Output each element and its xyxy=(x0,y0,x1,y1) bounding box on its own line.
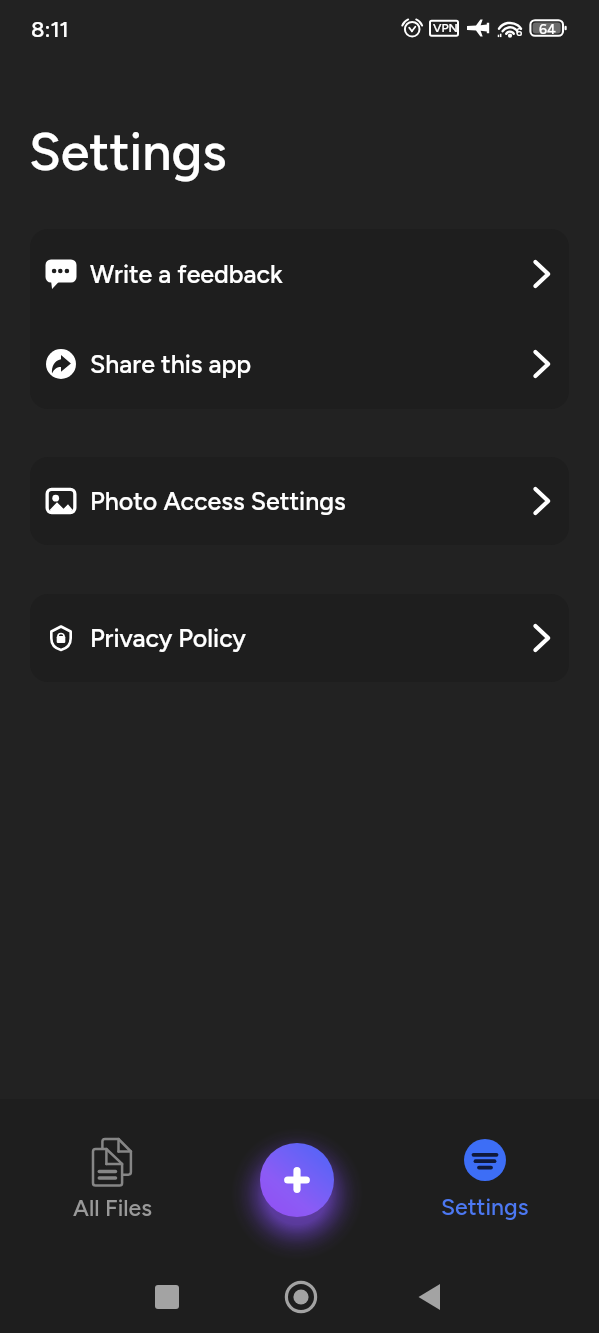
staticText: VPN xyxy=(433,21,458,35)
staticText: 8:11 xyxy=(31,16,69,42)
button[interactable]: Settings xyxy=(429,1139,541,1221)
button[interactable]: All Files xyxy=(56,1137,168,1222)
button[interactable]: Back xyxy=(405,1273,453,1321)
staticText: Share this app xyxy=(90,349,252,379)
staticText: Privacy Policy xyxy=(90,623,246,653)
button[interactable]: Recents xyxy=(143,1273,191,1321)
staticText: Photo Access Settings xyxy=(90,486,346,516)
button[interactable]: Share this app xyxy=(30,319,569,409)
button[interactable]: Privacy Policy xyxy=(30,594,569,682)
button[interactable]: Write a feedback xyxy=(30,229,569,319)
staticText: 6 xyxy=(516,26,523,39)
staticText: Settings xyxy=(29,121,227,183)
staticText: Write a feedback xyxy=(90,259,283,289)
staticText: 64 xyxy=(539,21,556,38)
button[interactable]: Photo Access Settings xyxy=(30,457,569,545)
button[interactable]: Add xyxy=(227,1110,367,1250)
staticText: All Files xyxy=(73,1194,152,1222)
staticText: Settings xyxy=(441,1193,529,1221)
button[interactable]: Home xyxy=(277,1273,325,1321)
